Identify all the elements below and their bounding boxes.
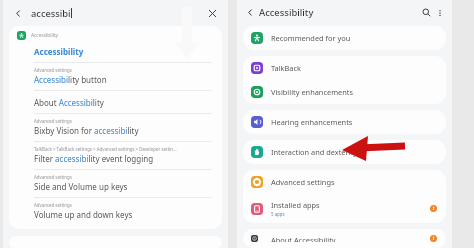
button[interactable]: TalkBack	[243, 56, 446, 80]
staticText: Side and Volume up keys	[34, 181, 128, 192]
staticText: Recommended for you	[271, 33, 351, 43]
button[interactable]: Advanced settings	[9, 114, 222, 141]
staticText: Accessibility button	[34, 74, 107, 85]
button[interactable]: Interaction and dexterity	[243, 140, 446, 164]
button[interactable]: Hearing enhancements	[243, 110, 446, 134]
staticText: Advanced settings	[271, 177, 335, 187]
button[interactable]: Accessibility	[9, 40, 222, 62]
button[interactable]: Installed apps	[243, 194, 446, 223]
staticText: Advanced settings	[34, 67, 72, 73]
staticText: Bixby Vision for accessibility	[34, 125, 139, 136]
button[interactable]: Back	[11, 6, 26, 21]
staticText: Visibility enhancements	[271, 87, 354, 97]
staticText: 5 apps	[271, 211, 285, 217]
staticText: Advanced settings	[34, 174, 72, 180]
staticText: About Accessibility	[34, 97, 104, 108]
button[interactable]: Advanced settings	[9, 63, 222, 90]
staticText: Filter accessibility event logging	[34, 153, 154, 164]
staticText: TalkBack	[271, 63, 301, 73]
staticText: Accessibility	[34, 46, 84, 57]
staticText: Interaction and dexterity	[271, 147, 357, 157]
staticText: Accessibility	[31, 32, 59, 39]
button[interactable]: Clear search	[205, 6, 220, 21]
button[interactable]: Advanced settings	[9, 170, 222, 197]
staticText: Installed apps	[271, 200, 320, 210]
staticText: accessibi	[31, 7, 71, 20]
staticText: Volume up and down keys	[34, 209, 133, 220]
staticText: About Accessibility	[271, 235, 336, 242]
staticText: Accessibility	[259, 6, 314, 19]
button[interactable]: Search	[419, 5, 433, 19]
staticText: Advanced settings	[34, 118, 72, 124]
button[interactable]: Advanced settings	[9, 198, 222, 225]
button[interactable]: More options	[433, 6, 446, 19]
button[interactable]: About Accessibility	[243, 229, 446, 248]
staticText: Advanced settings	[34, 202, 72, 208]
button[interactable]: Back	[243, 5, 257, 19]
button[interactable]: Visibility enhancements	[243, 80, 446, 104]
button[interactable]: Recommended for you	[243, 26, 446, 50]
staticText: TalkBack > TalkBack settings > Advanced …	[34, 146, 177, 152]
button[interactable]: About Accessibility	[9, 91, 222, 113]
button[interactable]: TalkBack > TalkBack settings > Advanced …	[9, 142, 222, 169]
staticText: Hearing enhancements	[271, 117, 353, 127]
button[interactable]: Advanced settings	[243, 170, 446, 194]
